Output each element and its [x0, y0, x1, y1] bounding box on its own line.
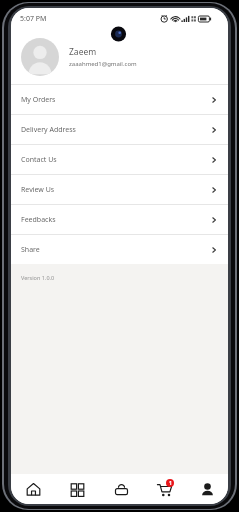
button[interactable]: Cart — [142, 474, 185, 504]
button[interactable]: Zaeem — [11, 30, 228, 84]
button[interactable]: Feedbacks — [11, 205, 228, 234]
button[interactable]: Profile — [185, 474, 228, 504]
button[interactable]: Contact Us — [11, 145, 228, 174]
staticText: Contact Us — [21, 155, 57, 165]
staticText: Delivery Address — [21, 125, 76, 135]
button[interactable]: Delivery Address — [11, 115, 228, 144]
staticText: Version 1.0.0 — [21, 274, 55, 281]
staticText: My Orders — [21, 95, 56, 105]
staticText: Zaeem — [69, 46, 97, 58]
staticText: Review Us — [21, 185, 55, 195]
staticText: zaaahmed1@gmail.com — [69, 60, 137, 68]
staticText: Share — [21, 245, 40, 255]
staticText: Feedbacks — [21, 215, 56, 225]
button[interactable]: My Orders — [11, 85, 228, 114]
button[interactable]: Bag — [99, 474, 142, 504]
button[interactable]: Review Us — [11, 175, 228, 204]
button[interactable]: Share — [11, 235, 228, 264]
button[interactable]: Categories — [55, 474, 99, 504]
staticText: 1 — [169, 480, 172, 487]
button[interactable]: Home — [11, 474, 55, 504]
staticText: 5:07 PM — [20, 14, 47, 24]
